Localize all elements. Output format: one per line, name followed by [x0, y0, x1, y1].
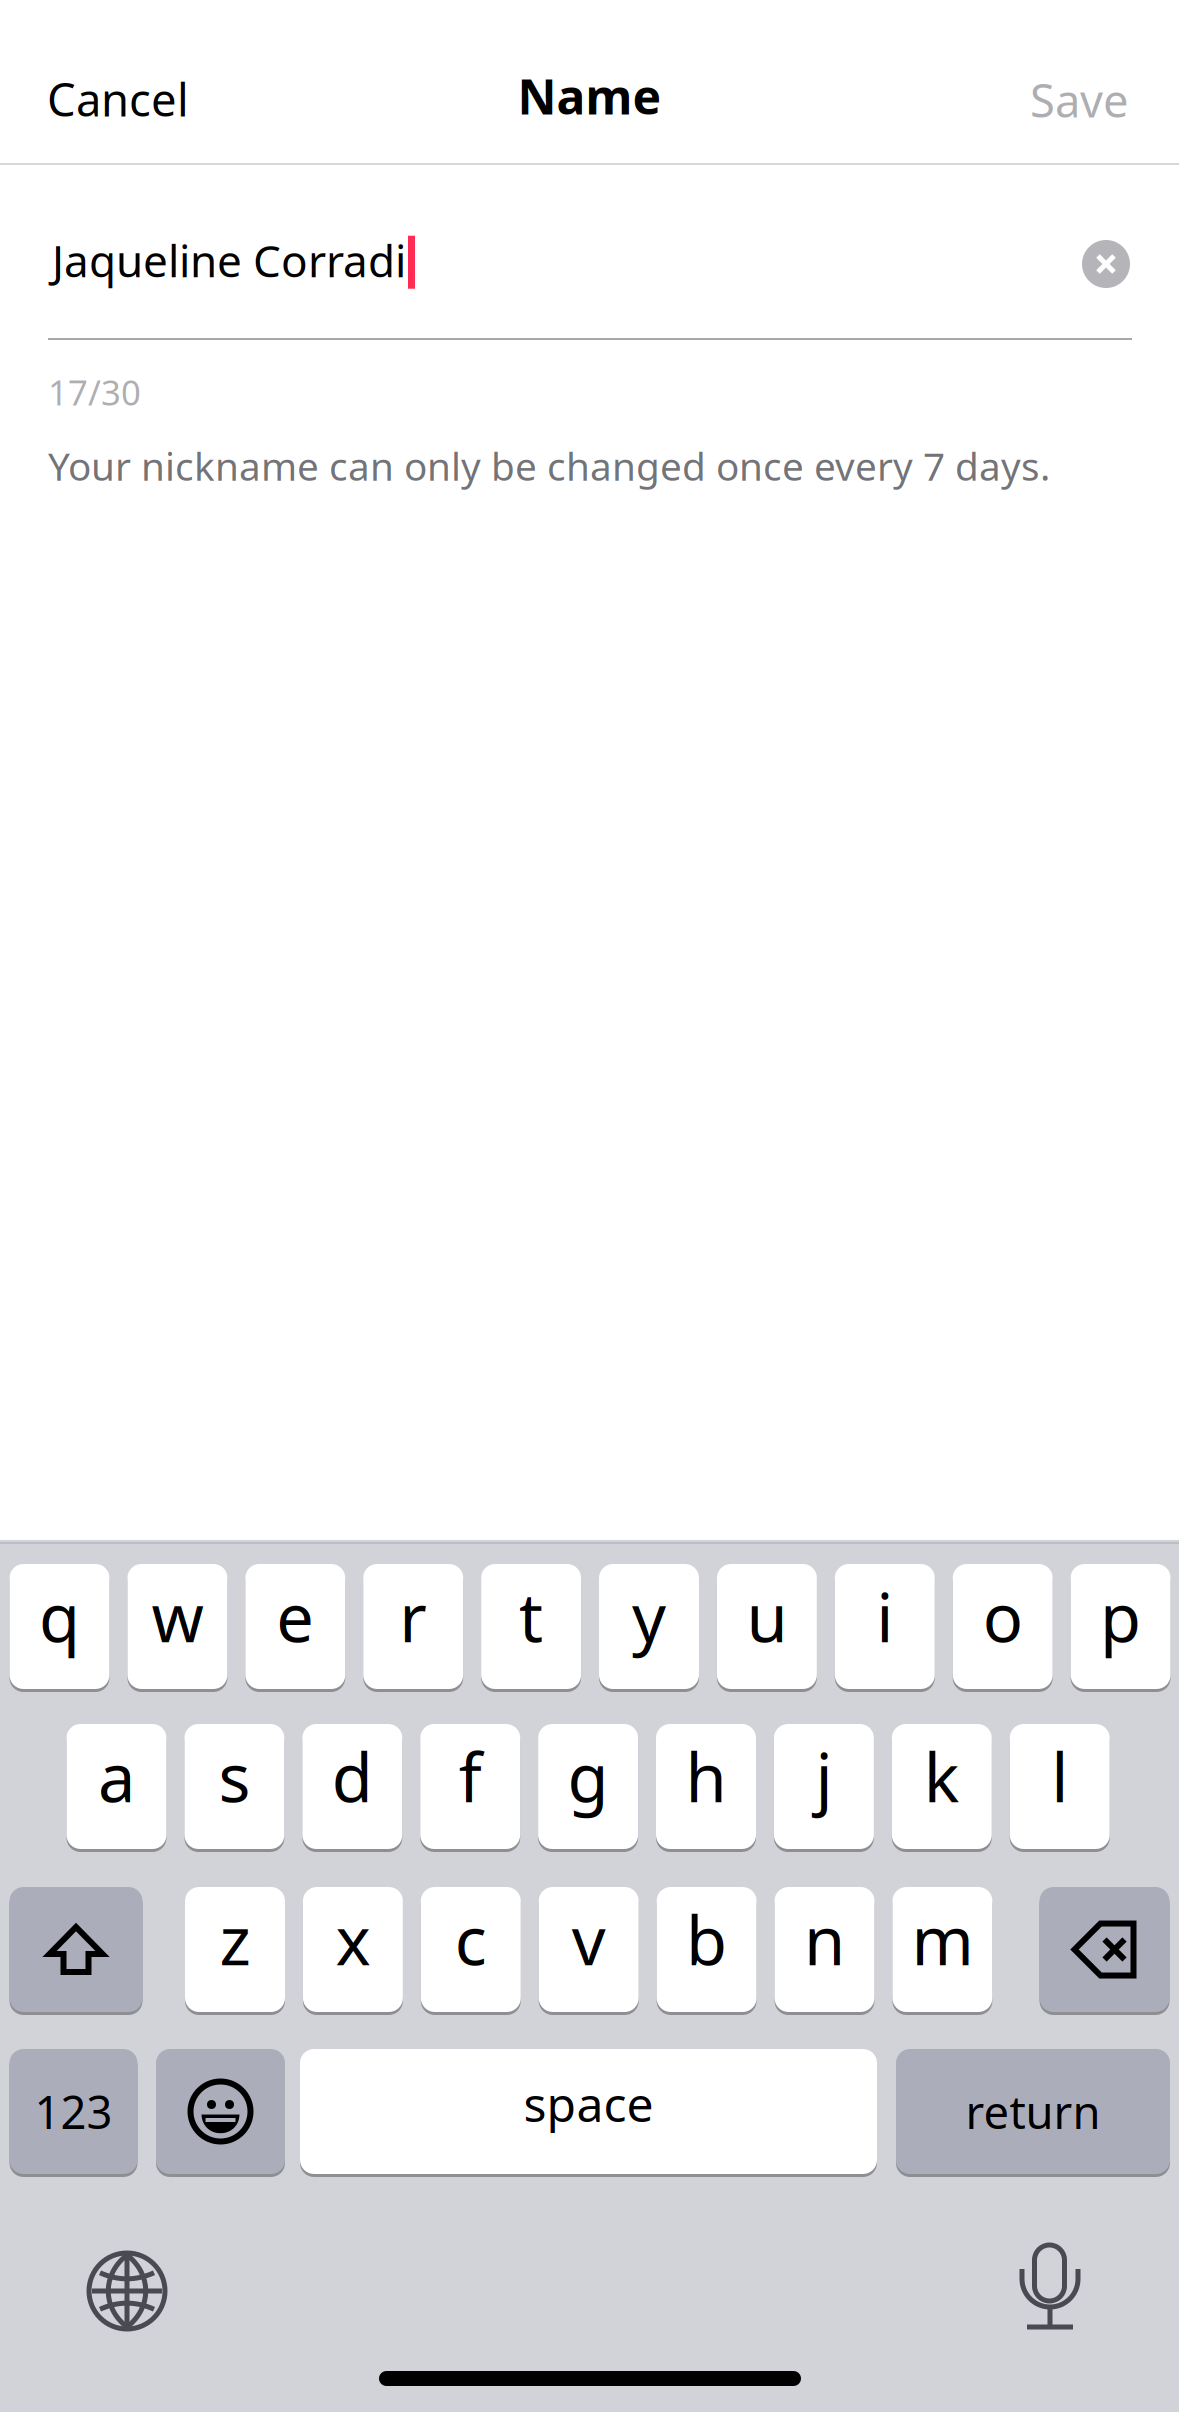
- button[interactable]: n: [774, 1887, 874, 2012]
- staticText: s: [218, 1732, 250, 1821]
- button[interactable]: x: [303, 1887, 403, 2012]
- button[interactable]: r: [363, 1564, 463, 1689]
- staticText: q: [39, 1572, 80, 1661]
- staticText: k: [924, 1732, 960, 1821]
- staticText: Your nickname can only be changed once e…: [48, 440, 1050, 491]
- button[interactable]: Dictation: [1019, 2243, 1081, 2335]
- staticText: a: [98, 1732, 135, 1821]
- staticText: r: [399, 1572, 427, 1661]
- button[interactable]: i: [835, 1564, 935, 1689]
- staticText: space: [523, 2072, 653, 2135]
- staticText: g: [568, 1732, 609, 1821]
- button[interactable]: space: [300, 2049, 877, 2174]
- staticText: b: [686, 1895, 727, 1984]
- button[interactable]: 123: [9, 2049, 137, 2174]
- button[interactable]: v: [539, 1887, 639, 2012]
- button[interactable]: c: [421, 1887, 521, 2012]
- staticText: o: [983, 1572, 1023, 1661]
- button[interactable]: g: [538, 1724, 638, 1849]
- button[interactable]: Save: [949, 50, 1129, 150]
- button[interactable]: Cancel: [47, 49, 227, 149]
- staticText: z: [219, 1895, 250, 1984]
- staticText: l: [1051, 1732, 1068, 1821]
- button[interactable]: Clear text: [1082, 240, 1130, 288]
- staticText: w: [151, 1572, 203, 1661]
- button[interactable]: p: [1071, 1564, 1171, 1689]
- staticText: 17/30: [48, 369, 141, 415]
- button[interactable]: b: [657, 1887, 757, 2012]
- staticText: u: [746, 1572, 787, 1661]
- button[interactable]: Shift: [9, 1887, 142, 2012]
- staticText: v: [572, 1895, 606, 1984]
- button[interactable]: Next keyboard: [89, 2253, 165, 2329]
- staticText: Save: [1030, 70, 1129, 130]
- button[interactable]: e: [245, 1564, 345, 1689]
- staticText: e: [276, 1572, 314, 1661]
- button[interactable]: o: [953, 1564, 1053, 1689]
- button[interactable]: j: [774, 1724, 874, 1849]
- staticText: Cancel: [47, 69, 189, 129]
- button[interactable]: l: [1010, 1724, 1110, 1849]
- staticText: d: [332, 1732, 373, 1821]
- button[interactable]: q: [9, 1564, 109, 1689]
- staticText: 123: [34, 2081, 112, 2142]
- staticText: x: [335, 1895, 370, 1984]
- button[interactable]: f: [420, 1724, 520, 1849]
- button[interactable]: u: [717, 1564, 817, 1689]
- staticText: Name: [517, 64, 661, 128]
- staticText: return: [965, 2081, 1100, 2142]
- button[interactable]: s: [184, 1724, 284, 1849]
- button[interactable]: z: [185, 1887, 285, 2012]
- button[interactable]: h: [656, 1724, 756, 1849]
- staticText: t: [519, 1572, 543, 1661]
- staticText: n: [804, 1895, 845, 1984]
- button[interactable]: w: [127, 1564, 227, 1689]
- staticText: j: [815, 1732, 832, 1821]
- button[interactable]: a: [66, 1724, 166, 1849]
- staticText: c: [455, 1895, 487, 1984]
- staticText: h: [685, 1732, 726, 1821]
- button[interactable]: m: [892, 1887, 992, 2012]
- button[interactable]: t: [481, 1564, 581, 1689]
- button[interactable]: return: [896, 2049, 1170, 2174]
- button[interactable]: k: [892, 1724, 992, 1849]
- button[interactable]: Delete: [1039, 1887, 1169, 2012]
- staticText: y: [632, 1572, 666, 1661]
- staticText: p: [1100, 1572, 1141, 1661]
- staticText: f: [459, 1732, 482, 1821]
- button[interactable]: d: [302, 1724, 402, 1849]
- button[interactable]: Emoji: [156, 2049, 285, 2174]
- staticText: i: [876, 1572, 893, 1661]
- staticText: Jaqueline Corradi: [52, 231, 406, 289]
- button[interactable]: y: [599, 1564, 699, 1689]
- staticText: m: [911, 1895, 973, 1984]
